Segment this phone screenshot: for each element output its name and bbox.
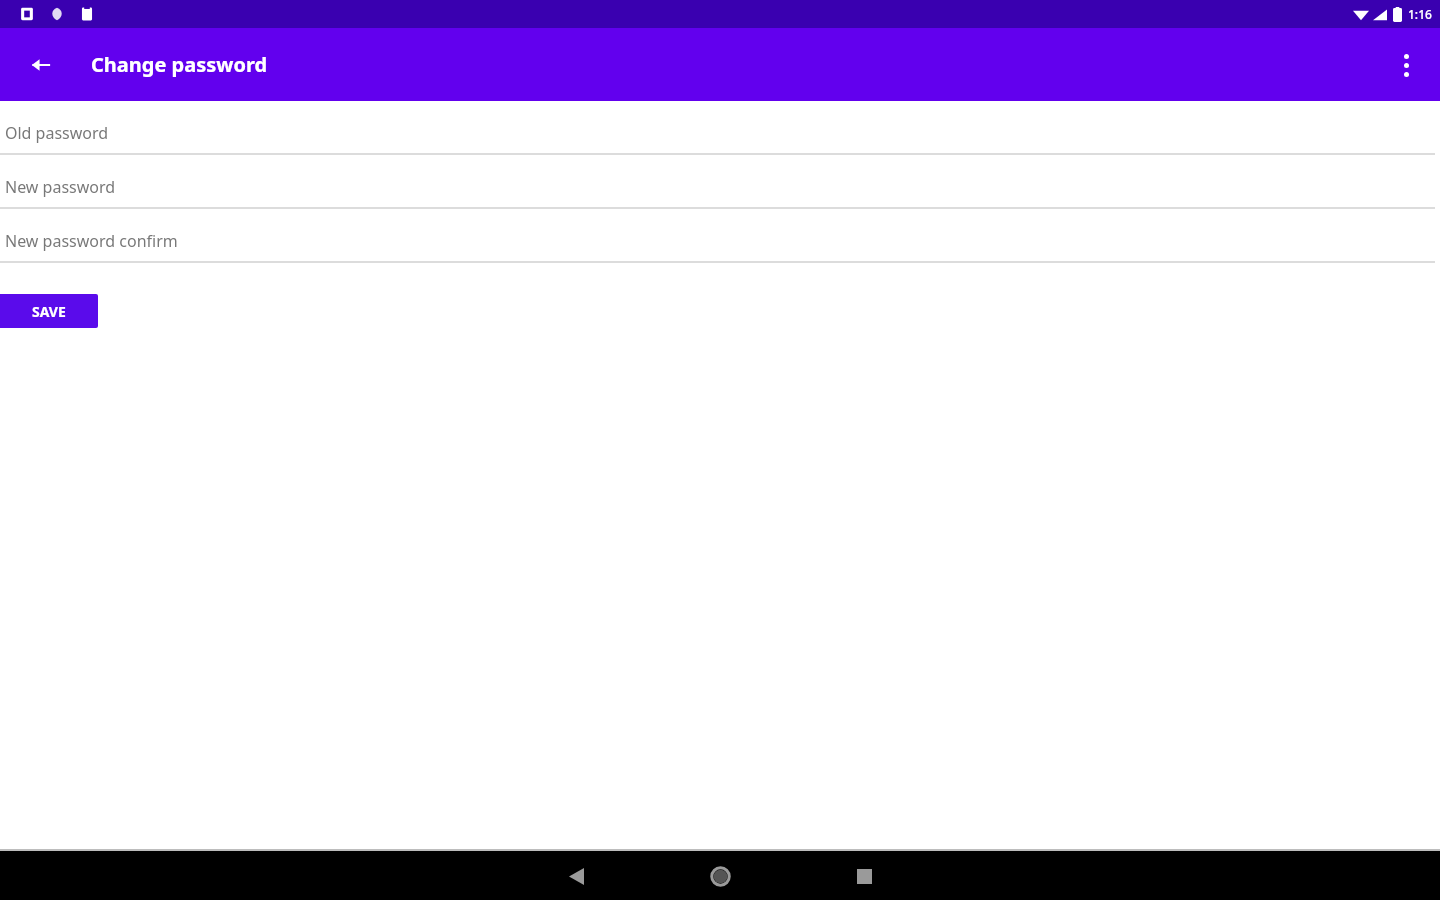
staticText: Old password (5, 122, 109, 144)
staticText: New password (5, 176, 116, 198)
button[interactable]: New password confirm (0, 220, 1440, 274)
button[interactable]: Home (696, 852, 744, 900)
button[interactable]: SAVE (0, 294, 98, 328)
staticText: 1:16 (1408, 6, 1432, 22)
button[interactable]: New password (0, 166, 1440, 220)
button[interactable]: Recent apps (840, 852, 888, 900)
button[interactable]: Old password (0, 112, 1440, 166)
button[interactable]: More options (1382, 41, 1430, 89)
button[interactable]: Back (552, 852, 600, 900)
staticText: Change password (91, 51, 268, 78)
staticText: SAVE (32, 302, 66, 321)
button[interactable]: Back (17, 41, 65, 89)
staticText: New password confirm (5, 230, 178, 252)
